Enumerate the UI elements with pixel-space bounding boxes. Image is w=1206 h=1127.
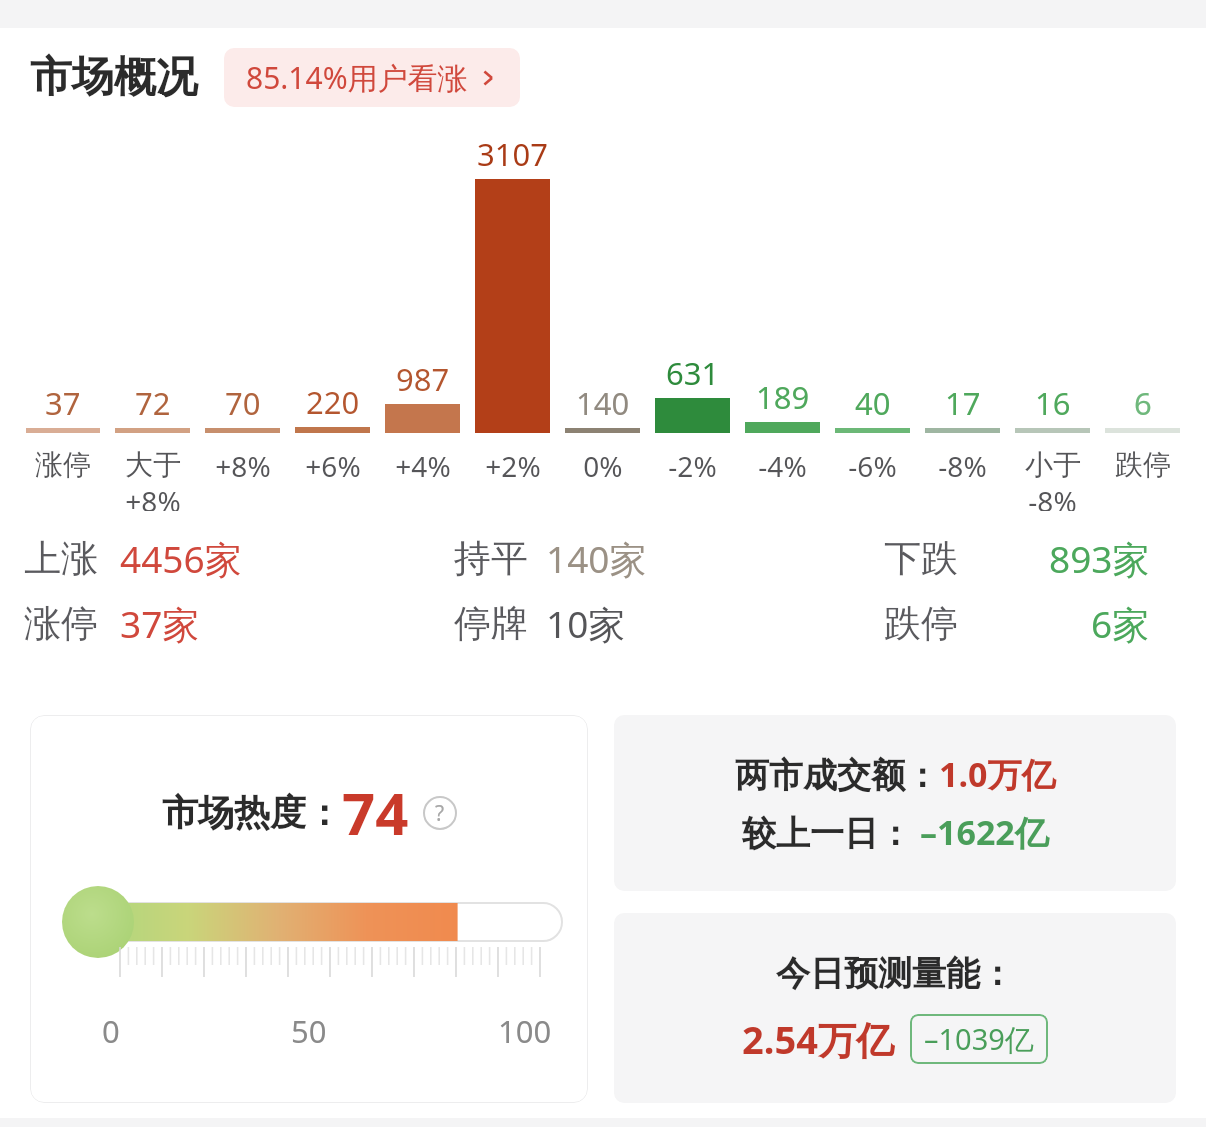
staticText: 37 — [45, 382, 81, 424]
staticText: 189 — [756, 376, 810, 418]
button[interactable]: 17 — [925, 133, 1000, 511]
staticText: 跌停 — [1115, 447, 1171, 482]
staticText: 停牌 — [454, 600, 528, 647]
staticText: 涨停 — [24, 600, 98, 647]
staticText: –1039亿 — [924, 1019, 1034, 1059]
staticText: 893家 — [1049, 533, 1150, 584]
button[interactable]: 70 — [205, 133, 280, 511]
staticText: +6% — [305, 447, 361, 485]
staticText: 下跌 — [884, 535, 958, 582]
staticText: 16 — [1035, 382, 1071, 424]
staticText: 40 — [855, 382, 891, 424]
staticText: 涨停 — [35, 447, 91, 482]
staticText: 今日预测量能： — [776, 952, 1014, 995]
staticText: 市场概况 — [30, 51, 198, 104]
staticText: 2.54万亿 — [742, 1013, 894, 1065]
button[interactable]: 市场热度说明 — [423, 796, 457, 830]
staticText: 70 — [225, 382, 261, 424]
button[interactable]: 两市成交额： — [614, 715, 1176, 891]
staticText: -2% — [668, 447, 717, 485]
button[interactable]: 140 — [565, 133, 640, 511]
button[interactable]: 今日预测量能： — [614, 913, 1176, 1103]
staticText: 4456家 — [120, 533, 242, 584]
button[interactable]: 72 — [115, 133, 190, 511]
staticText: 1.0万亿 — [939, 751, 1056, 797]
button[interactable]: 37 — [26, 133, 100, 511]
staticText: 大于 — [125, 447, 181, 482]
staticText: -6% — [848, 447, 897, 485]
staticText: 140 — [576, 382, 630, 424]
button[interactable]: 85.14%用户看涨 — [224, 48, 520, 107]
staticText: 10家 — [546, 598, 626, 649]
button[interactable]: 631 — [655, 133, 730, 511]
button[interactable]: 189 — [745, 133, 820, 511]
button[interactable]: 220 — [295, 133, 370, 511]
staticText: -4% — [758, 447, 807, 485]
staticText: 6 — [1134, 382, 1152, 424]
staticText: 74 — [342, 773, 409, 852]
staticText: 85.14%用户看涨 — [246, 57, 468, 98]
staticText: +8% — [215, 447, 271, 485]
staticText: 631 — [666, 352, 720, 394]
staticText: +2% — [485, 447, 541, 485]
button[interactable]: 16 — [1015, 133, 1090, 511]
staticText: 50 — [291, 1010, 327, 1052]
staticText: 两市成交额： — [735, 754, 939, 797]
staticText: 上涨 — [24, 535, 98, 582]
staticText: 市场热度： — [162, 790, 342, 835]
button[interactable]: 3107 — [475, 133, 550, 511]
staticText: 140家 — [546, 533, 647, 584]
staticText: 持平 — [454, 535, 528, 582]
staticText: +8% — [125, 482, 181, 511]
staticText: –1622亿 — [920, 809, 1049, 855]
button[interactable]: 40 — [835, 133, 910, 511]
staticText: 小于 — [1025, 447, 1081, 482]
staticText: +4% — [395, 447, 451, 485]
staticText: 100 — [498, 1010, 552, 1052]
staticText: 37家 — [120, 598, 200, 649]
button[interactable]: 987 — [385, 133, 460, 511]
staticText: 较上一日： — [742, 812, 912, 855]
staticText: 6家 — [1091, 598, 1150, 649]
button[interactable]: 市场热度： — [30, 715, 588, 1103]
staticText: 220 — [306, 381, 360, 423]
staticText: 987 — [396, 358, 450, 400]
staticText: 0 — [102, 1010, 120, 1052]
button[interactable]: 6 — [1105, 133, 1180, 511]
staticText: 0% — [583, 447, 623, 485]
staticText: 17 — [945, 382, 981, 424]
staticText: -8% — [938, 447, 987, 485]
staticText: 跌停 — [884, 600, 958, 647]
staticText: -8% — [1028, 482, 1077, 511]
staticText: ? — [435, 799, 445, 828]
staticText: 3107 — [477, 133, 548, 175]
staticText: 72 — [135, 382, 171, 424]
